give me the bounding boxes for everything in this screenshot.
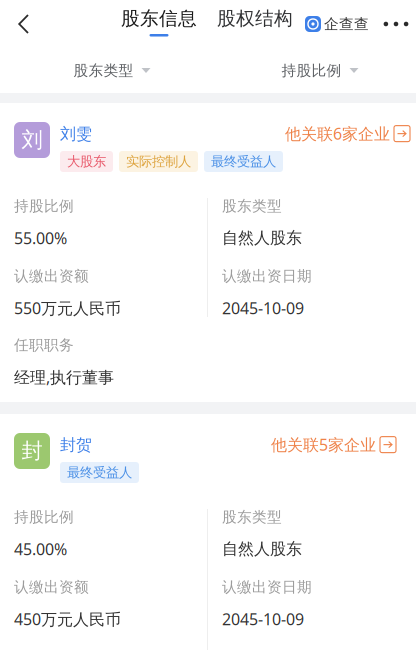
staticText: 股东类型	[73, 61, 133, 79]
staticText: 刘雯	[60, 124, 92, 144]
staticText: 他关联5家企业	[271, 434, 376, 455]
button[interactable]: 他关联5家企业	[271, 433, 403, 455]
staticText: 持股比例	[14, 508, 74, 526]
staticText: 自然人股东	[222, 228, 302, 248]
button[interactable]: 企查查	[305, 0, 369, 48]
staticText: 45.00%	[14, 538, 67, 560]
staticText: 股东信息	[121, 7, 197, 30]
staticText: 刘	[21, 127, 42, 153]
staticText: 认缴出资额	[14, 267, 89, 285]
staticText: 企查查	[324, 15, 369, 33]
staticText: 认缴出资日期	[222, 578, 312, 596]
staticText: 持股比例	[281, 61, 341, 79]
staticText: 450万元人民币	[14, 608, 121, 630]
staticText: 封	[21, 438, 42, 464]
button[interactable]: More	[376, 0, 416, 48]
button[interactable]: 持股比例	[208, 48, 416, 92]
button[interactable]: 股东类型	[0, 48, 208, 92]
button[interactable]: Back	[0, 0, 48, 48]
staticText: 持股比例	[14, 197, 74, 215]
staticText: 最终受益人	[211, 153, 276, 170]
staticText: 股东类型	[222, 197, 282, 215]
staticText: 经理,执行董事	[14, 366, 114, 388]
staticText: 最终受益人	[67, 464, 132, 481]
staticText: 他关联6家企业	[285, 123, 390, 144]
staticText: 封贺	[60, 435, 92, 455]
button[interactable]: 股东信息	[121, 0, 197, 48]
staticText: 股东类型	[222, 508, 282, 526]
staticText: 自然人股东	[222, 539, 302, 559]
staticText: 550万元人民币	[14, 297, 121, 319]
button[interactable]: 他关联6家企业	[285, 122, 416, 144]
staticText: 2045-10-09	[222, 608, 304, 630]
button[interactable]: 股权结构	[217, 0, 293, 48]
staticText: 认缴出资日期	[222, 267, 312, 285]
staticText: 55.00%	[14, 227, 67, 249]
staticText: 股权结构	[217, 7, 293, 30]
staticText: 任职职务	[14, 336, 74, 354]
staticText: 实际控制人	[126, 153, 191, 170]
staticText: 认缴出资额	[14, 578, 89, 596]
staticText: 大股东	[67, 153, 106, 170]
staticText: 2045-10-09	[222, 297, 304, 319]
